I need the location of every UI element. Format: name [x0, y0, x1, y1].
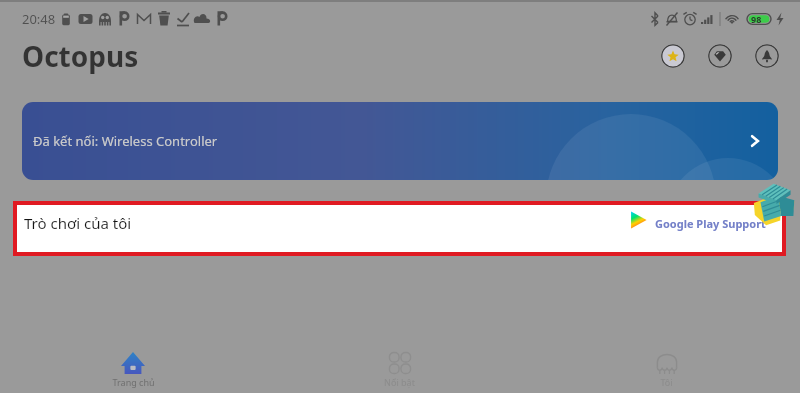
staticText: 20:48 [22, 10, 56, 28]
staticText: Octopus [22, 37, 139, 75]
staticText: Nổi bật [384, 376, 415, 388]
staticText: Đã kết nối: Wireless Controller [33, 132, 218, 150]
staticText: Tôi [660, 376, 673, 388]
button[interactable]: Trang chủ [0, 346, 266, 393]
staticText: Trang chủ [112, 376, 155, 388]
staticText: 98 [751, 13, 762, 25]
staticText: Trò chơi của tôi [24, 213, 132, 233]
button[interactable]: Premium [708, 44, 732, 68]
button[interactable]: Đã kết nối: Wireless Controller [22, 102, 778, 180]
staticText: Google Play Support [655, 216, 766, 231]
button[interactable]: Favourites [661, 44, 685, 68]
button[interactable]: Boost [755, 44, 779, 68]
button[interactable]: Trò chơi của tôi [17, 205, 782, 252]
